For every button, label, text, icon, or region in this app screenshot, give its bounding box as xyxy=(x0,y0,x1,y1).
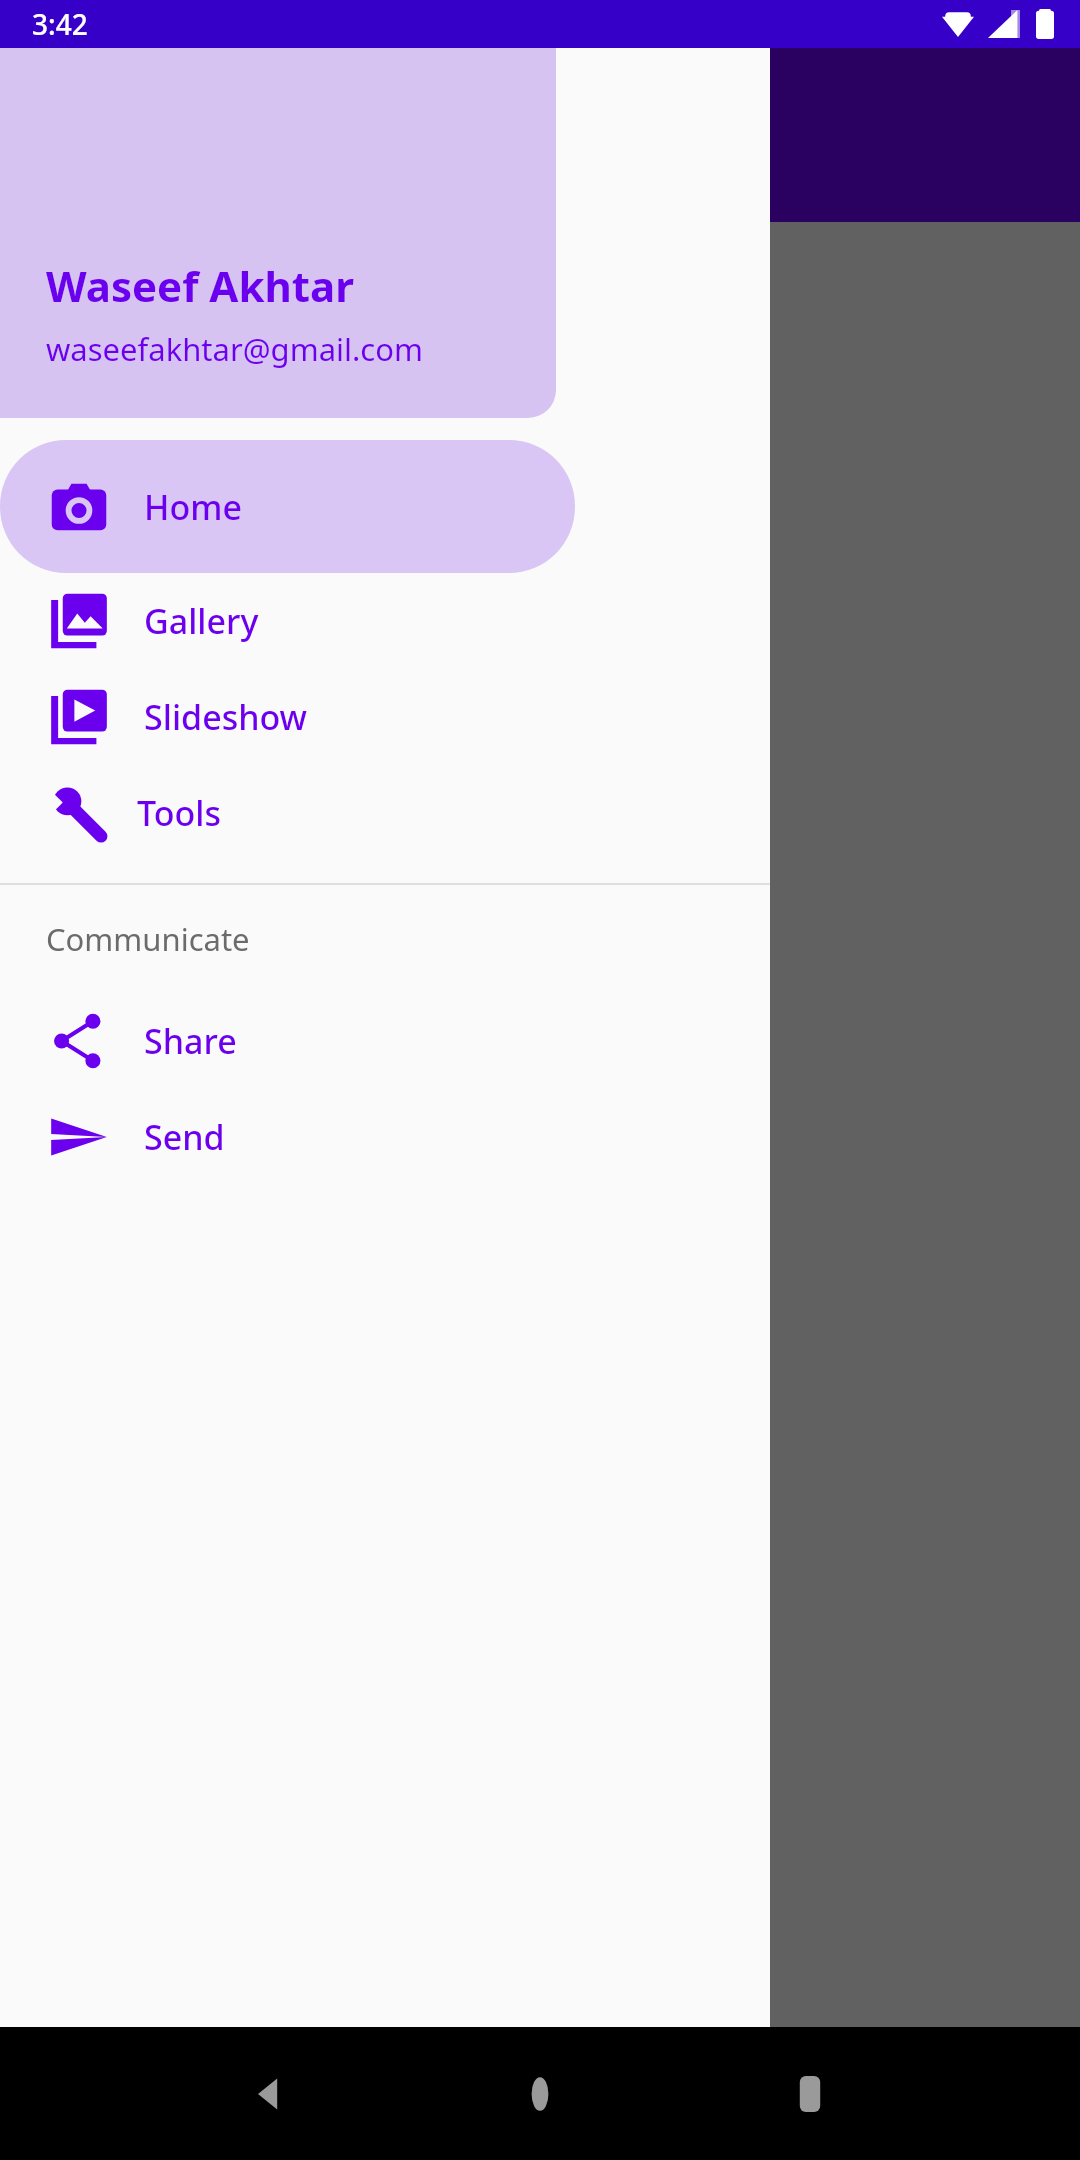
other: Home xyxy=(50,478,108,536)
other: Slideshow xyxy=(50,688,108,746)
staticText: Share xyxy=(144,1018,237,1064)
staticText: Waseef Akhtar xyxy=(46,257,354,314)
button[interactable]: Waseef Akhtar xyxy=(0,48,556,418)
other: Tools xyxy=(50,784,108,842)
staticText: Tools xyxy=(137,790,221,836)
staticText: Gallery xyxy=(144,598,259,644)
other: Gallery xyxy=(50,592,108,650)
other: Share xyxy=(50,1012,108,1070)
button[interactable]: Recent apps xyxy=(780,2064,840,2124)
button[interactable]: Gallery xyxy=(0,573,770,669)
button[interactable]: Share xyxy=(0,993,770,1089)
other: Send xyxy=(50,1108,108,1166)
staticText: Communicate xyxy=(46,918,250,960)
staticText: Home xyxy=(144,484,242,530)
button[interactable]: Tools xyxy=(0,765,770,861)
staticText: Slideshow xyxy=(144,694,308,740)
staticText: Send xyxy=(144,1114,225,1160)
button[interactable]: Back xyxy=(240,2064,300,2124)
button[interactable]: Home xyxy=(0,440,575,573)
button[interactable]: Send xyxy=(0,1089,770,1185)
staticText: waseefakhtar@gmail.com xyxy=(46,328,423,370)
button[interactable]: Slideshow xyxy=(0,669,770,765)
staticText: 3:42 xyxy=(32,5,88,43)
button[interactable]: Home xyxy=(510,2064,570,2124)
